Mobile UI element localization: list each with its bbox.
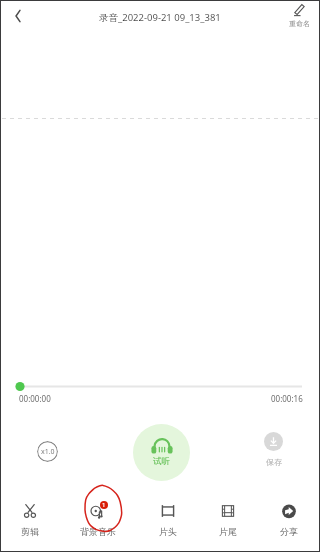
- button[interactable]: 剪辑: [0, 496, 60, 544]
- button[interactable]: 保存: [258, 432, 289, 467]
- staticText: 试听: [153, 456, 170, 467]
- staticText: 1: [102, 501, 106, 509]
- button[interactable]: 片头: [138, 496, 198, 544]
- button[interactable]: 分享: [259, 496, 319, 544]
- staticText: x1.0: [41, 447, 55, 457]
- staticText: 00:00:00: [19, 393, 51, 404]
- staticText: 保存: [266, 457, 282, 467]
- staticText: 重命名: [289, 19, 310, 28]
- staticText: 00:00:16: [271, 393, 303, 404]
- button[interactable]: Rename: [289, 3, 310, 28]
- button[interactable]: 1: [68, 496, 128, 544]
- staticText: 背景音乐: [80, 526, 116, 537]
- staticText: 录音_2022-09-21 09_13_381: [99, 11, 221, 24]
- button[interactable]: x1.0: [37, 441, 58, 462]
- staticText: 片头: [159, 526, 177, 537]
- staticText: 剪辑: [21, 526, 39, 537]
- staticText: 分享: [280, 526, 298, 537]
- button[interactable]: Back: [6, 4, 30, 28]
- button[interactable]: 片尾: [198, 496, 258, 544]
- staticText: 片尾: [219, 526, 237, 537]
- button[interactable]: 试听: [133, 424, 190, 481]
